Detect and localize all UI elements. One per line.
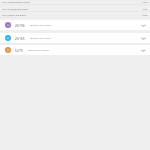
other: Expand	[141, 36, 146, 41]
staticText: Selected: 10% of users	[30, 24, 51, 27]
staticText: 6275	[15, 48, 23, 53]
staticText: VPN Subscriptions Total	[2, 0, 30, 3]
staticText: 1000	[142, 0, 148, 3]
staticText: VPN Commercial Base	[2, 7, 28, 10]
staticText: 26165	[15, 36, 25, 41]
button[interactable]: VPN Multi-Link Base	[0, 11, 150, 18]
staticText: VPN Multi-Link Base	[2, 13, 26, 16]
staticText: 500	[143, 7, 148, 10]
button[interactable]: 6275	[0, 45, 150, 55]
staticText: 2000	[142, 13, 148, 16]
staticText: 26196	[15, 23, 25, 28]
other: Expand	[141, 48, 146, 53]
button[interactable]: 26196	[0, 20, 150, 30]
button[interactable]: 26165	[0, 33, 150, 43]
button[interactable]: VPN Subscriptions Total	[0, 0, 150, 5]
staticText: Selected: 10% of users	[28, 49, 49, 52]
staticText: Selected: 10% of users	[30, 37, 51, 40]
button[interactable]: VPN Commercial Base	[0, 5, 150, 12]
other: Expand	[141, 23, 146, 28]
